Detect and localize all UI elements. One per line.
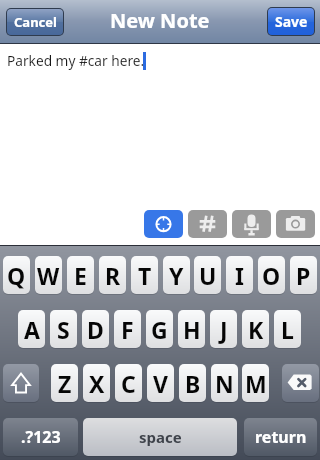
button[interactable]: Shift	[3, 364, 39, 402]
staticText: X	[89, 368, 105, 399]
button[interactable]: Y	[163, 256, 190, 294]
button[interactable]: U	[194, 256, 221, 294]
button[interactable]: V	[147, 364, 174, 402]
button[interactable]: I	[226, 256, 253, 294]
button[interactable]: .?123	[3, 418, 78, 456]
staticText: Q	[7, 260, 26, 291]
button[interactable]: K	[242, 310, 269, 348]
staticText: U	[199, 260, 217, 291]
button[interactable]: O	[258, 256, 285, 294]
staticText: space	[139, 427, 182, 447]
button[interactable]: Camera	[276, 210, 315, 238]
button[interactable]: space	[83, 418, 237, 456]
button[interactable]: Z	[51, 364, 78, 402]
button[interactable]: M	[242, 364, 269, 402]
staticText: J	[220, 314, 228, 345]
staticText: F	[121, 314, 134, 345]
staticText: W	[37, 260, 60, 291]
staticText: Parked my #car here.	[7, 51, 145, 70]
staticText: B	[185, 368, 201, 399]
button[interactable]: Add location	[144, 210, 183, 238]
staticText: New Note	[110, 7, 210, 34]
button[interactable]: X	[83, 364, 110, 402]
staticText: C	[121, 368, 136, 399]
button[interactable]: T	[131, 256, 158, 294]
button[interactable]: Save	[268, 8, 314, 35]
staticText: H	[183, 314, 201, 345]
button[interactable]: E	[67, 256, 94, 294]
staticText: N	[215, 368, 234, 399]
button[interactable]: S	[50, 310, 77, 348]
button[interactable]: Voice input	[232, 210, 271, 238]
button[interactable]: G	[146, 310, 173, 348]
button[interactable]: A	[18, 310, 45, 348]
button[interactable]: R	[99, 256, 126, 294]
staticText: L	[281, 314, 294, 345]
staticText: O	[262, 260, 281, 291]
staticText: Z	[58, 368, 72, 399]
button[interactable]: L	[274, 310, 301, 348]
staticText: R	[105, 260, 121, 291]
button[interactable]: F	[114, 310, 141, 348]
staticText: Y	[169, 260, 184, 291]
button[interactable]: Add tag	[188, 210, 227, 238]
button[interactable]: N	[211, 364, 238, 402]
button[interactable]: D	[82, 310, 109, 348]
staticText: K	[248, 314, 264, 345]
staticText: Save	[275, 12, 308, 31]
staticText: T	[138, 260, 152, 291]
staticText: M	[245, 368, 267, 399]
staticText: D	[87, 314, 104, 345]
staticText: return	[255, 426, 307, 448]
button[interactable]: Backspace	[282, 364, 319, 402]
staticText: V	[153, 368, 168, 399]
staticText: I	[235, 260, 244, 291]
button[interactable]: J	[210, 310, 237, 348]
staticText: G	[151, 314, 168, 345]
staticText: Cancel	[14, 13, 57, 31]
button[interactable]: H	[178, 310, 205, 348]
button[interactable]: Q	[3, 256, 30, 294]
staticText: A	[24, 314, 40, 345]
button[interactable]: W	[35, 256, 62, 294]
staticText: P	[296, 260, 311, 291]
staticText: S	[57, 314, 70, 345]
button[interactable]: return	[244, 418, 317, 456]
staticText: E	[74, 260, 87, 291]
button[interactable]: Cancel	[7, 9, 63, 35]
staticText: .?123	[21, 426, 61, 448]
button[interactable]: B	[179, 364, 206, 402]
button[interactable]: C	[115, 364, 142, 402]
button[interactable]: P	[290, 256, 317, 294]
